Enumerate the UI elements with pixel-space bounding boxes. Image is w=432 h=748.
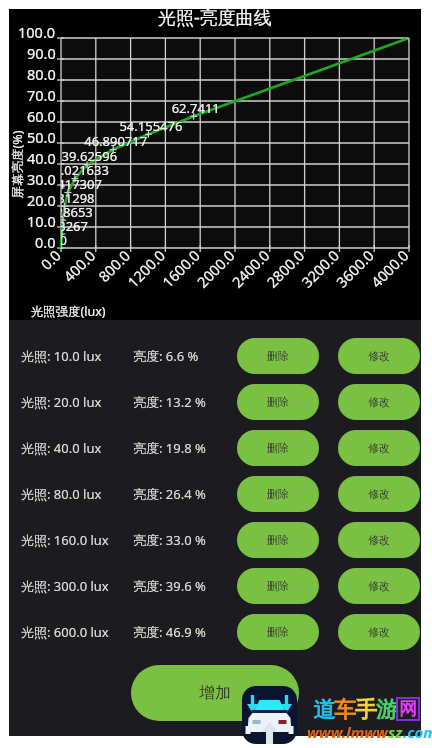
staticText: 亮度: 33.0 % <box>133 531 206 549</box>
staticText: 删除 <box>267 579 289 593</box>
button[interactable]: 修改 <box>338 338 420 374</box>
staticText: 删除 <box>267 625 289 639</box>
button[interactable]: 删除 <box>237 614 319 650</box>
button[interactable]: 修改 <box>338 430 420 466</box>
staticText: 删除 <box>267 487 289 501</box>
button[interactable]: 增加 <box>131 665 299 721</box>
staticText: 光照: 600.0 lux <box>21 623 109 641</box>
staticText: 修改 <box>368 441 390 455</box>
staticText: 亮度: 39.6 % <box>133 577 206 595</box>
button[interactable]: 修改 <box>338 568 420 604</box>
staticText: 光照: 80.0 lux <box>21 485 102 503</box>
staticText: 修改 <box>368 395 390 409</box>
staticText: 光照: 300.0 lux <box>21 577 109 595</box>
staticText: 光照: 40.0 lux <box>21 439 102 457</box>
button[interactable]: 删除 <box>237 522 319 558</box>
button[interactable]: 修改 <box>338 384 420 420</box>
staticText: 亮度: 13.2 % <box>133 393 206 411</box>
staticText: 增加 <box>199 683 231 703</box>
staticText: 亮度: 46.9 % <box>133 623 206 641</box>
staticText: 删除 <box>267 441 289 455</box>
button[interactable]: 删除 <box>237 476 319 512</box>
button[interactable]: 删除 <box>237 430 319 466</box>
staticText: 删除 <box>267 349 289 363</box>
button[interactable]: 删除 <box>237 338 319 374</box>
staticText: 修改 <box>368 533 390 547</box>
button[interactable]: 修改 <box>338 476 420 512</box>
staticText: 删除 <box>267 533 289 547</box>
staticText: 光照: 10.0 lux <box>21 347 102 365</box>
button[interactable]: 删除 <box>237 384 319 420</box>
button[interactable]: 删除 <box>237 568 319 604</box>
staticText: 光照: 20.0 lux <box>21 393 102 411</box>
staticText: 亮度: 6.6 % <box>133 347 199 365</box>
button[interactable]: 修改 <box>338 614 420 650</box>
staticText: 亮度: 26.4 % <box>133 485 206 503</box>
staticText: 亮度: 19.8 % <box>133 439 206 457</box>
staticText: 修改 <box>368 579 390 593</box>
staticText: 修改 <box>368 487 390 501</box>
staticText: 修改 <box>368 349 390 363</box>
staticText: 删除 <box>267 395 289 409</box>
button[interactable]: 修改 <box>338 522 420 558</box>
staticText: 修改 <box>368 625 390 639</box>
staticText: 光照: 160.0 lux <box>21 531 109 549</box>
